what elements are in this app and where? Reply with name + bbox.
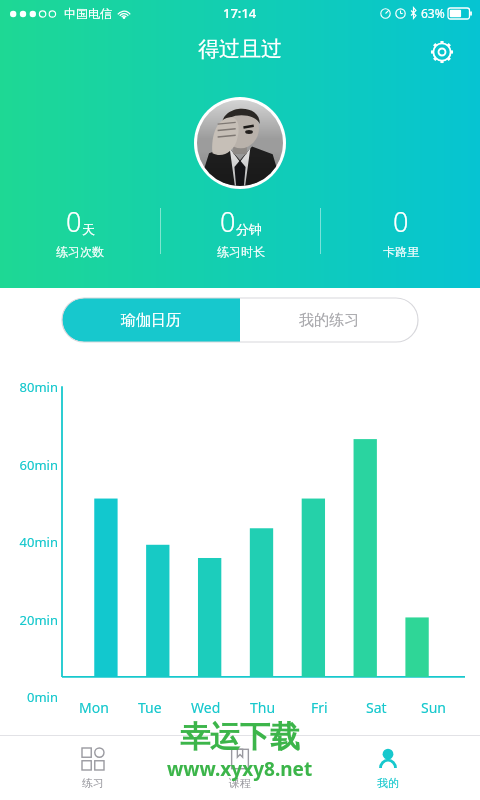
button[interactable]: Profile photo [194,97,286,189]
staticText: 0min [0,688,58,706]
button[interactable]: 课程 [185,736,295,800]
staticText: 天 [82,221,95,237]
button[interactable]: 我的 [333,736,443,800]
staticText: 40min [0,533,58,551]
staticText: 中国电信 [64,6,112,21]
button[interactable]: 0 [321,203,480,259]
staticText: Thu [250,698,276,717]
staticText: 0 [220,203,236,240]
staticText: 幸运下载 [180,718,300,756]
staticText: Sun [421,698,446,717]
staticText: Wed [191,698,221,717]
staticText: 我的练习 [299,311,359,330]
staticText: 课程 [229,776,251,790]
staticText: 瑜伽日历 [121,311,181,330]
staticText: Tue [138,698,162,717]
staticText: 20min [0,611,58,629]
staticText: 60min [0,456,58,474]
staticText: www.xyxy8.net [167,756,313,782]
staticText: 我的 [377,776,399,790]
button[interactable]: 练习 [38,736,148,800]
staticText: Mon [79,698,109,717]
staticText: 分钟 [236,221,262,237]
staticText: Fri [311,698,328,717]
button[interactable]: 瑜伽日历 [62,298,240,342]
button[interactable]: Settings [420,30,464,74]
staticText: 0 [393,203,409,240]
staticText: 得过且过 [0,36,480,62]
button[interactable]: 0 [161,203,320,259]
button[interactable]: 0 [0,203,160,259]
staticText: 练习次数 [56,244,104,259]
staticText: 63% [421,5,445,21]
staticText: 80min [0,378,58,396]
staticText: Sat [366,698,387,717]
button[interactable]: 我的练习 [240,298,418,342]
staticText: 练习 [82,776,104,790]
staticText: 练习时长 [217,244,265,259]
staticText: 17:14 [223,4,257,22]
staticText: 0 [66,203,82,240]
staticText: 卡路里 [383,244,419,259]
